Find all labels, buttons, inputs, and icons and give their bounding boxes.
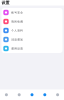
staticText: 通用设置: [11, 47, 23, 50]
button[interactable]: Apps: [0, 93, 13, 96]
button[interactable]: Messages: [38, 93, 51, 96]
button[interactable]: Discover: [13, 93, 26, 96]
staticText: 设置: [1, 0, 9, 5]
button[interactable]: 我的收藏: [1, 17, 62, 26]
button[interactable]: 账号安全: [1, 8, 62, 17]
button[interactable]: 消息通知: [1, 35, 62, 44]
staticText: 消息通知: [11, 38, 23, 41]
staticText: 个人资料: [11, 29, 23, 32]
button[interactable]: 个人资料: [1, 26, 62, 35]
button[interactable]: Home: [26, 93, 38, 96]
staticText: 我的收藏: [11, 20, 23, 23]
staticText: 账号安全: [11, 11, 23, 14]
button[interactable]: Profile: [51, 93, 64, 96]
button[interactable]: 通用设置: [1, 44, 62, 53]
